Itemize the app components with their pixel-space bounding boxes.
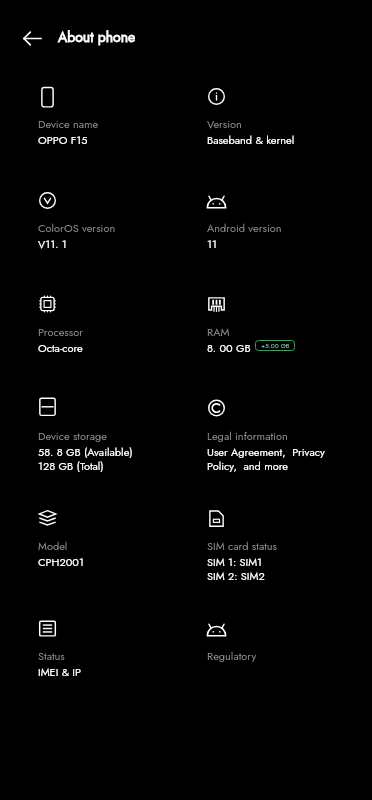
staticText: SIM 1: SIM1 <box>207 554 263 570</box>
staticText: Model <box>38 538 68 554</box>
staticText: ColorOS version <box>38 220 116 236</box>
button[interactable]: Version <box>207 64 372 168</box>
staticText: Version <box>207 116 242 132</box>
button[interactable]: Back <box>12 18 52 58</box>
staticText: Device name <box>38 116 99 132</box>
staticText: 128 GB (Total) <box>38 458 104 474</box>
button[interactable]: +5.00 GB <box>255 340 295 351</box>
button[interactable]: Device storage <box>38 376 207 486</box>
staticText: Regulatory <box>207 648 257 664</box>
button[interactable]: SIM card status <box>207 486 372 596</box>
button[interactable]: RAM <box>207 272 372 376</box>
staticText: 11 <box>207 236 217 252</box>
staticText: OPPO F15 <box>38 132 88 148</box>
button[interactable]: Processor <box>38 272 207 376</box>
staticText: Baseband & kernel <box>207 132 295 148</box>
staticText: Processor <box>38 324 83 340</box>
staticText: CPH2001 <box>38 554 84 570</box>
staticText: +5.00 GB <box>261 341 290 351</box>
staticText: V11. 1 <box>38 236 67 252</box>
staticText: User Agreement, Privacy <box>207 444 325 460</box>
staticText: Android version <box>207 220 282 236</box>
button[interactable]: Status <box>38 596 207 700</box>
staticText: SIM card status <box>207 538 278 554</box>
staticText: Status <box>38 648 65 664</box>
staticText: Legal information <box>207 428 288 444</box>
button[interactable]: Android version <box>207 168 372 272</box>
staticText: About phone <box>58 27 136 47</box>
button[interactable]: Device name <box>38 64 207 168</box>
staticText: Policy, and more <box>207 458 289 474</box>
button[interactable]: ColorOS version <box>38 168 207 272</box>
staticText: 58. 8 GB (Available) <box>38 444 133 460</box>
staticText: Octa-core <box>38 340 83 356</box>
button[interactable]: Regulatory <box>207 596 372 700</box>
staticText: IMEI & IP <box>38 664 82 680</box>
button[interactable]: Model <box>38 486 207 596</box>
staticText: 8. 00 GB <box>207 340 251 356</box>
button[interactable]: Legal information <box>207 376 372 486</box>
staticText: RAM <box>207 324 230 340</box>
staticText: SIM 2: SIM2 <box>207 568 265 584</box>
staticText: Device storage <box>38 428 107 444</box>
